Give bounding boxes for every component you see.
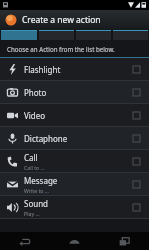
button[interactable]: Photo xyxy=(0,81,149,103)
button[interactable]: Recents xyxy=(99,232,149,250)
other: Select Message xyxy=(133,181,140,188)
button[interactable]: Home xyxy=(49,232,99,250)
staticText: Choose an Action from the list below. xyxy=(7,45,115,53)
staticText: Play ... xyxy=(24,210,40,217)
other: Select Call xyxy=(133,158,140,165)
button[interactable]: Back xyxy=(0,232,49,250)
other: Select Dictaphone xyxy=(133,135,140,142)
staticText: Message xyxy=(24,175,58,186)
other: App icon xyxy=(5,14,17,26)
button[interactable]: Flashlight xyxy=(0,58,149,80)
other: Select Flashlight xyxy=(133,66,140,73)
button[interactable]: Video xyxy=(0,104,149,126)
staticText: Write to ... xyxy=(24,187,49,194)
staticText: Photo xyxy=(24,87,47,98)
staticText: Create a new action xyxy=(22,14,101,26)
other: Select Sound xyxy=(133,204,140,211)
button[interactable]: Dictaphone xyxy=(0,127,149,149)
other: Select Video xyxy=(133,112,140,119)
button[interactable]: Call xyxy=(0,150,149,172)
button[interactable]: Sound xyxy=(0,196,149,218)
button[interactable] xyxy=(1,30,37,40)
button[interactable] xyxy=(113,30,148,40)
other: Select Photo xyxy=(133,89,140,96)
button[interactable] xyxy=(39,30,74,40)
staticText: Call xyxy=(24,152,38,163)
staticText: Dictaphone xyxy=(24,133,68,144)
staticText: Call to ... xyxy=(24,164,45,171)
button[interactable]: App icon xyxy=(0,10,149,30)
button[interactable] xyxy=(76,30,111,40)
staticText: Flashlight xyxy=(24,64,61,75)
button[interactable]: Message xyxy=(0,173,149,195)
staticText: Sound xyxy=(24,198,49,209)
staticText: Video xyxy=(24,110,46,121)
